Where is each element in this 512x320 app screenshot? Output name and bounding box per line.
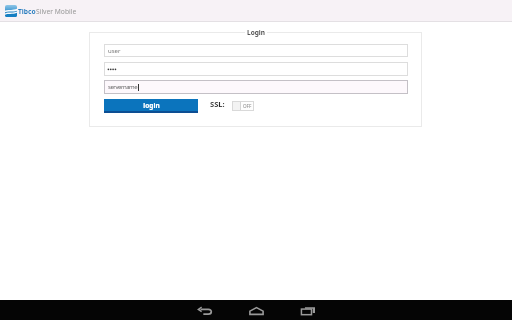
staticText: SSL: bbox=[210, 99, 225, 109]
button[interactable]: login bbox=[104, 99, 198, 113]
staticText: servername bbox=[108, 83, 138, 91]
button[interactable]: SSL toggle, off bbox=[232, 101, 254, 111]
button[interactable]: Home bbox=[230, 300, 282, 320]
staticText: Login bbox=[247, 28, 265, 37]
staticText: Silver Mobile bbox=[36, 7, 77, 16]
button[interactable]: Password bbox=[104, 62, 408, 76]
button[interactable]: Tibco bbox=[5, 0, 77, 22]
staticText: login bbox=[143, 101, 160, 110]
staticText: user bbox=[108, 47, 121, 55]
staticText: Tibco bbox=[18, 7, 36, 16]
staticText: OFF bbox=[243, 103, 252, 109]
button[interactable]: Back bbox=[180, 300, 232, 320]
button[interactable]: servername bbox=[104, 80, 408, 94]
button[interactable]: user bbox=[104, 44, 408, 57]
button[interactable]: Recent apps bbox=[282, 300, 334, 320]
